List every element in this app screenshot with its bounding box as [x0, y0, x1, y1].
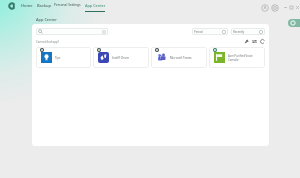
button[interactable]: Period: [192, 28, 228, 35]
button[interactable]: Pin: [244, 39, 249, 44]
button[interactable]: Minimize: [282, 3, 288, 12]
staticText: Backup: [37, 3, 51, 8]
staticText: App Center: [85, 3, 105, 8]
staticText: Period: [194, 30, 203, 34]
button[interactable]: Settings: [271, 4, 279, 12]
staticText: Personal Settings: [54, 3, 80, 7]
button[interactable]: Recently: [231, 28, 265, 35]
button[interactable]: Tips: [36, 47, 91, 68]
button[interactable]: Personal Settings: [54, 3, 80, 7]
button[interactable]: Intel® Driver: [93, 47, 149, 68]
button[interactable]: Acer Purified Voice Console: [209, 47, 265, 68]
staticText: App Center: [36, 17, 57, 22]
button[interactable]: Maximize: [288, 3, 294, 12]
button[interactable]: Cloud backup: [288, 19, 300, 27]
staticText: Intel® Driver: [112, 56, 130, 60]
button[interactable]: Filter: [252, 39, 257, 44]
button[interactable]: App Center: [85, 3, 105, 12]
button[interactable]: Home: [21, 3, 33, 8]
staticText: Microsoft Teams: [170, 56, 192, 60]
staticText: Acer Purified Voice Console: [228, 54, 263, 61]
button[interactable]: Close: [294, 3, 300, 12]
button[interactable]: Acer logo: [9, 3, 15, 9]
button[interactable]: Backup: [37, 3, 51, 8]
staticText: Recently: [233, 30, 245, 34]
button[interactable]: Account: [261, 4, 269, 12]
staticText: Tips: [55, 56, 61, 60]
button[interactable]: [36, 28, 108, 35]
button[interactable]: Microsoft Teams: [151, 47, 207, 68]
staticText: Cannot find app?: [36, 40, 60, 44]
button[interactable]: Refresh: [260, 39, 265, 44]
staticText: Home: [21, 3, 33, 8]
